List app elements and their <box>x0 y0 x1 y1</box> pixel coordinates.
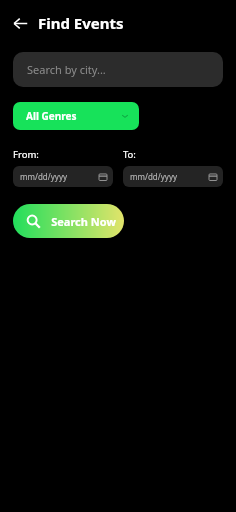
button[interactable]: Search by city... <box>13 52 223 87</box>
staticText: Search Now <box>51 214 116 229</box>
button[interactable]: Back <box>8 11 32 35</box>
staticText: All Genres <box>26 109 77 123</box>
staticText: mm/dd/yyyy <box>130 171 178 182</box>
button[interactable]: mm/dd/yyyy <box>123 166 223 187</box>
button[interactable]: All Genres <box>13 102 139 130</box>
staticText: mm/dd/yyyy <box>20 171 68 182</box>
button[interactable]: Search Now <box>13 204 124 238</box>
staticText: To: <box>123 148 136 161</box>
staticText: From: <box>13 148 39 161</box>
staticText: Search by city... <box>27 62 106 77</box>
button[interactable]: mm/dd/yyyy <box>13 166 113 187</box>
staticText: Find Events <box>38 13 124 33</box>
